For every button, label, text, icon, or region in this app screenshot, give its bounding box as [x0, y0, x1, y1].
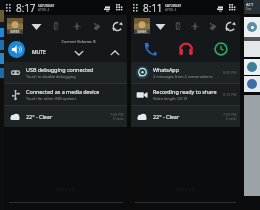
- staticText: APRIL 4: [165, 8, 177, 12]
- staticText: Recording ready to share: [153, 88, 217, 95]
- button[interactable]: User: [134, 18, 150, 34]
- staticText: APRIL 4: [38, 8, 50, 12]
- button[interactable]: Wi-Fi: [29, 19, 43, 33]
- button[interactable]: MUTE: [30, 49, 48, 56]
- button[interactable]: 22° - Clear: [131, 106, 240, 127]
- staticText: USB debugging connected: [26, 66, 94, 73]
- button[interactable]: Airplane mode: [188, 19, 202, 33]
- staticText: 8:17: [16, 1, 36, 15]
- staticText: 22° - Clear: [153, 113, 180, 120]
- staticText: HOLO ICE: [176, 187, 195, 192]
- staticText: 7:00 PM: [110, 112, 124, 117]
- button[interactable]: Airplane mode: [70, 19, 84, 33]
- button[interactable]: Recording ready to share: [131, 84, 240, 105]
- button[interactable]: Bluetooth: [49, 19, 63, 33]
- button[interactable]: USB debugging connected: [4, 62, 127, 83]
- other: Signal: [104, 4, 112, 12]
- other: Battery: [229, 4, 237, 12]
- other: Battery: [116, 4, 124, 12]
- button[interactable]: WhatsApp: [131, 62, 240, 83]
- staticText: 8 cards: [113, 117, 124, 121]
- other: Signal: [217, 4, 225, 12]
- staticText: 22° - Clear: [26, 113, 53, 120]
- staticText: Touch for other USB options: [26, 96, 77, 101]
- staticText: Current Volume: 8: [30, 39, 127, 44]
- staticText: Sun: [246, 7, 252, 11]
- staticText: 8 cards: [226, 117, 237, 121]
- staticText: 8:05 PM: [223, 70, 237, 75]
- staticText: OWNER: [137, 30, 147, 34]
- button[interactable]: Phone: [141, 40, 159, 58]
- staticText: 7:00 PM: [223, 112, 237, 117]
- button[interactable]: Volume: [4, 36, 127, 62]
- button[interactable]: Connected as a media device: [4, 84, 127, 105]
- staticText: HOLO ICE: [56, 187, 75, 192]
- staticText: MUTE: [32, 49, 46, 56]
- staticText: 2 messages from 2 conversations: [153, 74, 213, 79]
- staticText: Video length: 02:19: [153, 96, 188, 101]
- button[interactable]: Bluetooth: [171, 19, 185, 33]
- staticText: ACT: [246, 2, 254, 7]
- button[interactable]: User: [7, 18, 23, 34]
- button[interactable]: Headphones: [177, 40, 195, 58]
- other: Apps: [133, 4, 140, 11]
- button[interactable]: Volume up: [108, 46, 121, 59]
- staticText: Touch to disable debugging: [26, 74, 76, 79]
- button[interactable]: Alarm: [212, 40, 230, 58]
- button[interactable]: Volume: [8, 41, 25, 58]
- button[interactable]: 22° - Clear: [4, 106, 127, 127]
- button[interactable]: Volume down: [72, 46, 85, 59]
- button[interactable]: Auto rotate: [223, 19, 237, 33]
- staticText: WhatsApp: [153, 66, 179, 73]
- other: Apps: [6, 4, 13, 11]
- staticText: OWNER: [10, 30, 20, 34]
- staticText: SATURDAY: [38, 4, 55, 8]
- staticText: 8:11: [143, 1, 163, 15]
- button[interactable]: Flashlight: [90, 19, 104, 33]
- staticText: Connected as a media device: [26, 88, 100, 95]
- button[interactable]: Flashlight: [206, 19, 220, 33]
- staticText: 8:10 PM: [223, 92, 237, 97]
- button[interactable]: Wi-Fi: [153, 19, 167, 33]
- staticText: SATURDAY: [165, 4, 182, 8]
- button[interactable]: Auto rotate: [110, 19, 124, 33]
